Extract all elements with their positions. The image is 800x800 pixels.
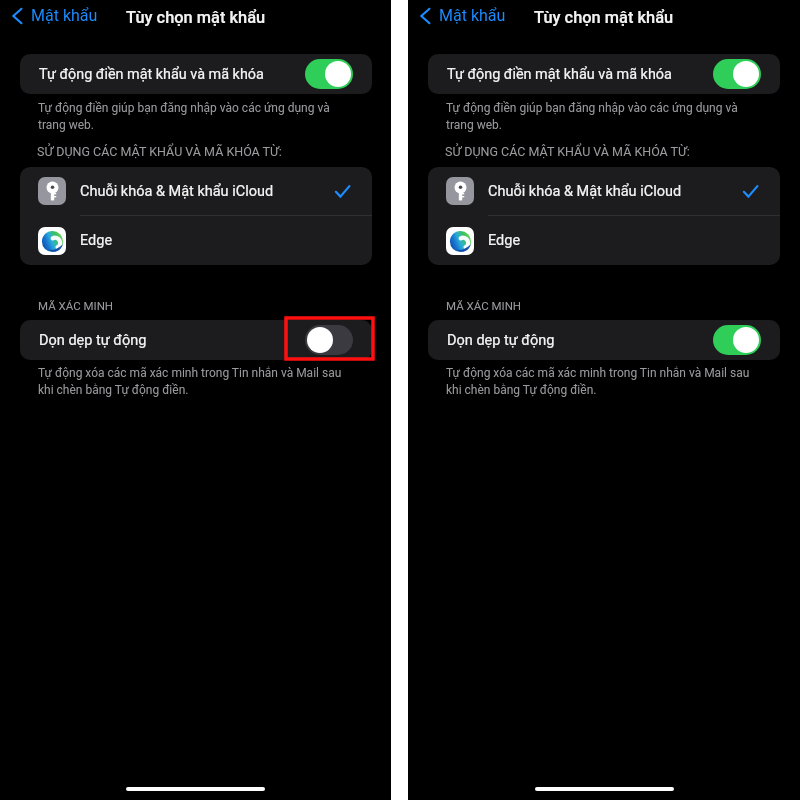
staticText: Tùy chọn mật khẩu [126,8,266,27]
button[interactable]: Dọn dẹp tự động [428,320,780,360]
button[interactable]: Toggle off [305,325,353,355]
staticText: Tự động điền mật khẩu và mã khóa [39,66,264,83]
button[interactable]: Mật khẩu [12,6,98,25]
staticText: Tự động xóa các mã xác minh trong Tin nh… [446,366,750,397]
button[interactable]: Tự động điền mật khẩu và mã khóa [428,54,780,94]
staticText: Mật khẩu [31,6,98,25]
button[interactable]: Mật khẩu [420,6,506,25]
staticText: Tự động điền giúp bạn đăng nhập vào các … [446,101,738,132]
staticText: Dọn dẹp tự động [39,332,147,349]
staticText: MÃ XÁC MINH [446,299,522,312]
button[interactable]: Chuỗi khóa & Mật khẩu iCloud [428,167,780,215]
button[interactable]: Toggle on [713,59,761,89]
staticText: Edge [80,232,113,249]
button[interactable]: Toggle on [305,59,353,89]
staticText: Tự động điền mật khẩu và mã khóa [447,66,672,83]
staticText: SỬ DỤNG CÁC MẬT KHẨU VÀ MÃ KHÓA TỪ: [445,144,690,159]
button[interactable]: Toggle on [713,325,761,355]
staticText: Tự động xóa các mã xác minh trong Tin nh… [38,366,342,397]
button[interactable]: Dọn dẹp tự động [20,320,372,360]
staticText: SỬ DỤNG CÁC MẬT KHẨU VÀ MÃ KHÓA TỪ: [37,144,282,159]
staticText: Chuỗi khóa & Mật khẩu iCloud [80,183,274,200]
staticText: Tự động điền giúp bạn đăng nhập vào các … [38,101,330,132]
staticText: Dọn dẹp tự động [447,332,555,349]
button[interactable]: Tự động điền mật khẩu và mã khóa [20,54,372,94]
button[interactable]: Edge [20,216,372,265]
staticText: Chuỗi khóa & Mật khẩu iCloud [488,183,682,200]
staticText: Edge [488,232,521,249]
button[interactable]: Chuỗi khóa & Mật khẩu iCloud [20,167,372,215]
staticText: Mật khẩu [439,6,506,25]
button[interactable]: Edge [428,216,780,265]
staticText: MÃ XÁC MINH [38,299,114,312]
staticText: Tùy chọn mật khẩu [534,8,674,27]
